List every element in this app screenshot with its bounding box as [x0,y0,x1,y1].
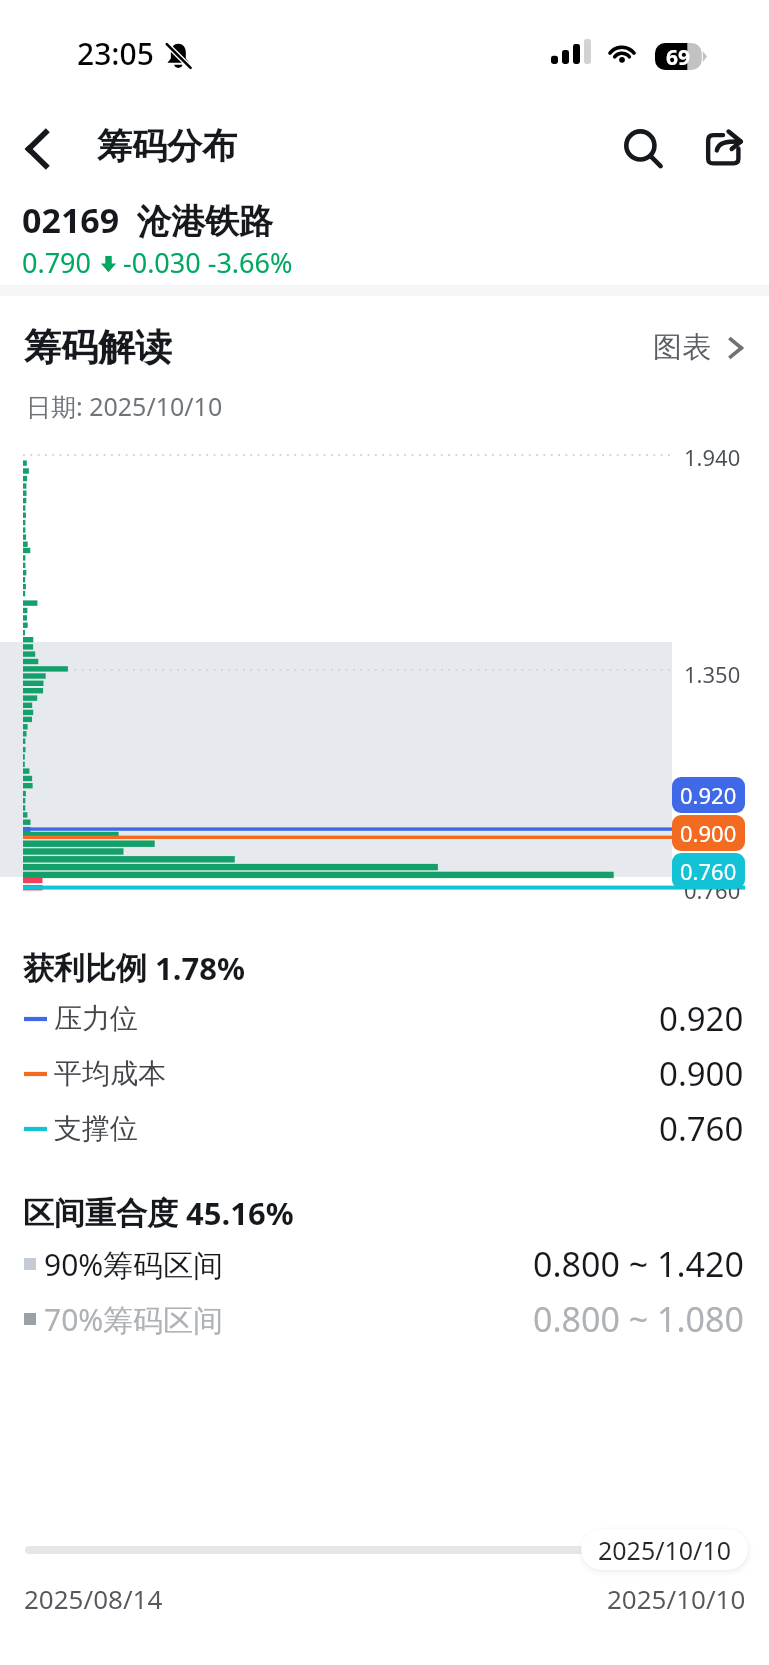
button[interactable]: Search [604,106,682,192]
button[interactable]: Back [1,106,73,192]
staticText: 1.940 [684,442,741,472]
button[interactable]: Share [684,106,763,192]
staticText: 筹码解读 [24,324,172,371]
staticText: 1.78% [155,947,245,989]
staticText: 图表 [653,329,711,366]
staticText: 0.900 [680,818,737,848]
staticText: 0.790 [22,244,92,281]
staticText: 2025/10/10 [598,1533,732,1567]
staticText: 0.920 [680,780,737,810]
staticText: 23:05 [77,33,154,74]
staticText: 2025/08/14 [24,1581,163,1616]
staticText: 区间重合度 [23,1194,178,1233]
button[interactable]: 90%筹码区间 [24,1241,744,1287]
staticText: 压力位 [54,1001,138,1036]
button[interactable]: 压力位 [24,996,744,1041]
staticText: 02169 沧港铁路 [22,197,273,243]
staticText: 2025/10/10 [607,1581,746,1616]
button[interactable]: 2025/10/10 [581,1529,748,1570]
staticText: -0.030 -3.66% [123,244,293,281]
staticText: 0.920 [659,996,744,1041]
staticText: 0.760 [684,875,741,905]
button[interactable]: 图表 [653,329,743,366]
staticText: 90%筹码区间 [44,1244,224,1285]
staticText: 0.800 ~ 1.420 [533,1241,744,1287]
staticText: 70%筹码区间 [44,1299,224,1340]
staticText: 日期: 2025/10/10 [26,389,223,423]
staticText: 0.900 [659,1051,744,1096]
button[interactable]: 70%筹码区间 [24,1296,744,1342]
staticText: 0.800 ~ 1.080 [533,1296,744,1342]
staticText: 平均成本 [54,1056,166,1091]
staticText: 1.350 [684,659,741,689]
staticText: 获利比例 [23,949,147,988]
button[interactable]: 平均成本 [24,1051,744,1096]
staticText: 0.760 [680,856,737,886]
button[interactable]: 支撑位 [24,1106,744,1151]
staticText: 支撑位 [54,1111,138,1146]
staticText: 45.16% [186,1192,294,1234]
staticText: 0.760 [659,1106,744,1151]
staticText: 69 [666,43,691,70]
staticText: 筹码分布 [97,124,237,168]
